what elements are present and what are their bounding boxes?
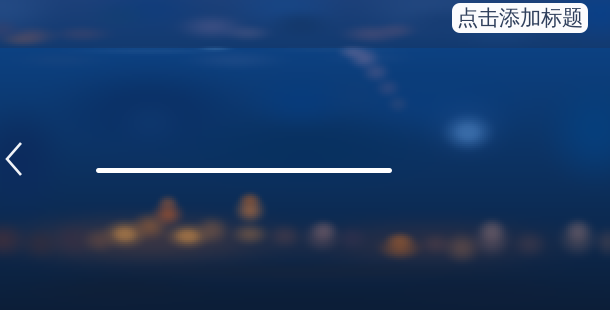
button[interactable]: Back — [0, 134, 44, 184]
staticText: 点击添加标题 — [457, 5, 583, 31]
button[interactable]: 点击添加标题 — [452, 3, 588, 33]
